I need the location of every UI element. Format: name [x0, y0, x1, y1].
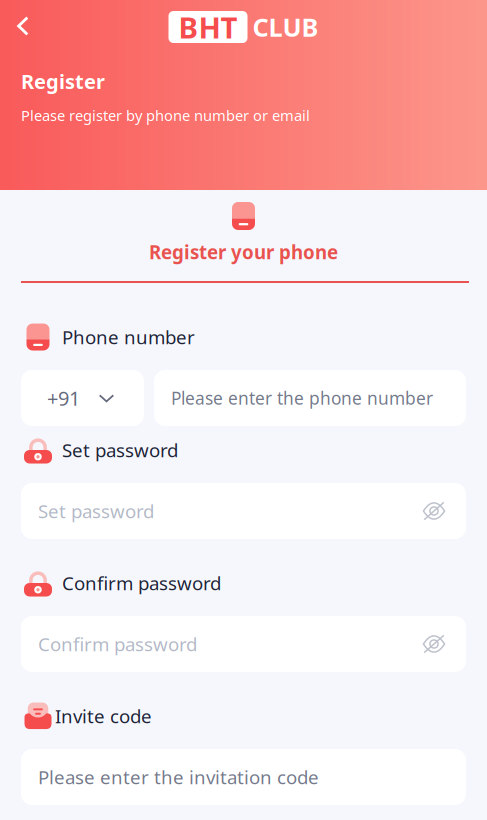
- button[interactable]: Please enter the invitation code: [21, 749, 466, 805]
- button[interactable]: Back: [6, 5, 40, 47]
- staticText: Register: [21, 68, 105, 95]
- staticText: Register your phone: [149, 240, 338, 264]
- staticText: Please enter the phone number: [171, 386, 433, 409]
- staticText: Invite code: [55, 704, 152, 728]
- button[interactable]: Please enter the phone number: [154, 370, 466, 426]
- staticText: CLUB: [252, 10, 318, 44]
- staticText: BHT: [178, 7, 237, 46]
- staticText: +91: [47, 385, 80, 411]
- staticText: Set password: [62, 438, 178, 462]
- staticText: Set password: [38, 499, 154, 523]
- staticText: Confirm password: [38, 632, 197, 656]
- button[interactable]: Confirm password: [21, 616, 466, 672]
- button[interactable]: +91: [21, 370, 144, 426]
- staticText: Please enter the invitation code: [38, 765, 319, 789]
- staticText: Please register by phone number or email: [21, 106, 310, 125]
- staticText: Confirm password: [62, 571, 221, 595]
- staticText: Phone number: [62, 325, 195, 349]
- button[interactable]: Set password: [21, 483, 466, 539]
